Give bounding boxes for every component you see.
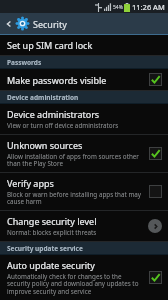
staticText: Device administration bbox=[7, 93, 79, 102]
staticText: Auto update security bbox=[7, 259, 95, 271]
staticText: Security update service bbox=[7, 244, 83, 253]
button[interactable]: Device administrators bbox=[0, 104, 168, 135]
button[interactable]: Unknown sources bbox=[0, 135, 168, 173]
staticText: Unknown sources bbox=[7, 139, 83, 151]
staticText: View or turn off device administrators bbox=[7, 121, 119, 130]
button[interactable]: Unchecked bbox=[149, 185, 162, 198]
button[interactable]: Set up SIM card lock bbox=[0, 35, 168, 56]
button[interactable]: Checked bbox=[149, 73, 162, 86]
button[interactable]: Checked bbox=[149, 147, 162, 160]
staticText: Make passwords visible bbox=[7, 74, 107, 86]
button[interactable]: Change security level bbox=[148, 219, 162, 233]
button[interactable]: Make passwords visible bbox=[0, 69, 168, 91]
staticText: Set up SIM card lock bbox=[7, 39, 93, 51]
staticText: Security bbox=[33, 18, 67, 30]
button[interactable]: Verify apps bbox=[0, 173, 168, 211]
staticText: 11:26 AM bbox=[132, 2, 165, 12]
button[interactable]: Back bbox=[0, 13, 168, 34]
staticText: Verify apps bbox=[7, 177, 54, 189]
staticText: Device administrators bbox=[7, 108, 100, 120]
staticText: Change security level bbox=[7, 215, 97, 227]
staticText: 54% bbox=[113, 4, 123, 11]
staticText: Block or warn before installing apps tha… bbox=[7, 190, 143, 206]
staticText: Allow installation of apps from sources … bbox=[7, 152, 143, 168]
button[interactable]: Checked bbox=[149, 271, 162, 284]
staticText: Passwords bbox=[7, 58, 42, 67]
button[interactable]: Auto update security bbox=[0, 255, 168, 300]
button[interactable]: Change security level bbox=[0, 211, 168, 242]
staticText: Normal: blocks explicit threats bbox=[7, 228, 97, 237]
staticText: Automatically check for changes to the s… bbox=[7, 272, 143, 296]
